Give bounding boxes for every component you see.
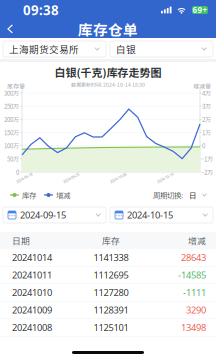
staticText: 28643 [181,251,206,264]
staticText: 2024-09-25 [62,175,80,181]
staticText: 69+ [192,5,207,15]
button[interactable]: 白银 [110,41,213,57]
staticText: 09:38 [23,1,59,19]
staticText: 日 [189,190,196,200]
staticText: 1141338 [93,251,128,264]
staticText: 数据更新时间: 2024-10-14 18:30 [71,81,145,88]
staticText: 150万 [4,128,19,137]
staticText: 2024-09-18 [15,175,33,181]
button[interactable]: Back [2,21,19,37]
staticText: 2024-10-08 [109,175,127,181]
staticText: -2万 [202,168,213,176]
staticText: 1112695 [93,269,128,281]
staticText: 4万 [202,89,211,97]
staticText: 300万 [4,89,19,97]
staticText: -1111 [183,286,206,299]
staticText: 增减量 [193,82,211,90]
staticText: 3万 [202,102,211,111]
staticText: 3290 [186,304,206,316]
staticText: -1万 [202,154,213,163]
staticText: 2024-09-15 [20,209,66,221]
staticText: 20241014 [12,251,52,264]
staticText: 库存 [22,190,36,200]
staticText: 20241009 [12,304,52,316]
button[interactable]: 2024-09-15 [3,207,106,223]
button[interactable]: 2024-10-15 [110,207,213,223]
staticText: 0 [202,141,205,150]
staticText: 1万 [202,128,211,137]
staticText: 13498 [181,321,206,334]
staticText: 100万 [4,141,19,150]
staticText: 20241010 [12,286,52,299]
staticText: 1125101 [93,321,128,334]
staticText: 200万 [4,115,19,124]
staticText: 250万 [4,102,19,111]
staticText: 1127280 [93,286,128,299]
staticText: 日期 [12,234,30,247]
staticText: 2024-10-15 [127,209,173,221]
staticText: 库存 [102,234,120,247]
staticText: 50万 [7,154,19,163]
staticText: 2万 [202,115,211,124]
button[interactable]: 日 [183,189,210,200]
staticText: 白银 [116,42,136,56]
staticText: 2024-10-14 [156,175,174,181]
staticText: 周期切换: [153,190,183,200]
staticText: 上海期货交易所 [9,42,79,56]
staticText: 0 [16,168,19,176]
staticText: 库存仓单 [78,18,138,40]
staticText: -14585 [178,269,206,281]
staticText: 白银(千克)库存走势图 [54,64,161,80]
staticText: 1128391 [93,304,128,316]
button[interactable]: 上海期货交易所 [3,41,106,57]
staticText: 20241011 [12,269,52,281]
staticText: 库存量 [7,82,25,90]
staticText: 增减 [188,234,206,247]
staticText: 20241008 [12,321,52,334]
staticText: 增减 [56,190,70,200]
